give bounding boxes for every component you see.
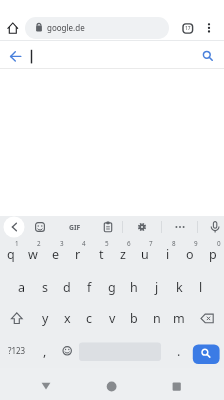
button[interactable] <box>5 303 28 334</box>
staticText: 5 <box>105 239 109 248</box>
button[interactable]: w <box>22 239 44 270</box>
staticText: 9 <box>194 239 198 248</box>
button[interactable]: , <box>35 336 55 367</box>
staticText: t <box>99 246 104 263</box>
staticText: 2 <box>37 239 41 248</box>
button[interactable]: z <box>112 239 134 270</box>
staticText: google.de <box>47 22 85 33</box>
button[interactable] <box>79 343 161 362</box>
button[interactable] <box>196 303 219 334</box>
button[interactable]: y <box>34 303 56 334</box>
button[interactable]: v <box>101 303 123 334</box>
staticText: . <box>177 343 181 360</box>
button[interactable]: b <box>123 303 145 334</box>
button[interactable] <box>96 371 128 399</box>
staticText: y <box>42 310 49 327</box>
staticText: 7 <box>149 239 153 248</box>
button[interactable]: d <box>56 272 78 303</box>
button[interactable]: c <box>78 303 100 334</box>
button[interactable] <box>25 17 169 39</box>
button[interactable] <box>193 343 220 363</box>
button[interactable]: t <box>90 239 112 270</box>
button[interactable]: k <box>168 272 190 303</box>
button[interactable] <box>169 216 191 238</box>
staticText: c <box>86 310 93 327</box>
staticText: h <box>130 279 138 296</box>
staticText: g <box>108 279 116 296</box>
staticText: 3 <box>60 239 64 248</box>
button[interactable] <box>56 335 78 366</box>
button[interactable] <box>6 46 26 67</box>
button[interactable]: . <box>169 336 189 367</box>
button[interactable]: n <box>146 303 168 334</box>
button[interactable] <box>29 216 51 238</box>
button[interactable]: l <box>190 272 212 303</box>
staticText: n <box>153 310 161 327</box>
button[interactable]: x <box>56 303 78 334</box>
staticText: k <box>176 279 183 296</box>
button[interactable] <box>179 20 196 37</box>
button[interactable]: m <box>168 303 190 334</box>
button[interactable]: j <box>146 272 168 303</box>
staticText: 4 <box>82 239 86 248</box>
button[interactable]: s <box>34 272 56 303</box>
button[interactable]: u <box>134 239 156 270</box>
button[interactable] <box>64 216 86 238</box>
staticText: ?123 <box>8 345 26 356</box>
button[interactable] <box>160 371 193 399</box>
staticText: 1 <box>15 239 19 248</box>
staticText: v <box>109 310 116 327</box>
staticText: GIF <box>69 223 81 232</box>
staticText: 8 <box>172 239 176 248</box>
button[interactable]: e <box>45 239 67 270</box>
staticText: s <box>42 279 48 296</box>
button[interactable] <box>201 19 217 37</box>
button[interactable] <box>204 216 224 238</box>
button[interactable]: g <box>101 272 123 303</box>
staticText: 6 <box>127 239 131 248</box>
button[interactable]: ?123 <box>2 335 32 366</box>
staticText: a <box>18 279 26 296</box>
button[interactable] <box>97 216 119 238</box>
staticText: u <box>141 246 149 263</box>
staticText: o <box>186 246 194 263</box>
staticText: r <box>75 246 81 263</box>
staticText: b <box>130 310 138 327</box>
button[interactable]: p <box>202 239 224 270</box>
staticText: j <box>155 279 159 296</box>
staticText: m <box>173 310 185 327</box>
staticText: i <box>166 246 170 263</box>
staticText: f <box>87 279 92 296</box>
button[interactable] <box>30 371 62 399</box>
button[interactable] <box>3 216 25 238</box>
staticText: w <box>28 246 38 263</box>
button[interactable]: f <box>78 272 100 303</box>
staticText: , <box>43 343 47 360</box>
button[interactable]: r <box>67 239 89 270</box>
button[interactable]: h <box>123 272 145 303</box>
staticText: p <box>209 246 217 263</box>
staticText: q <box>7 246 15 263</box>
button[interactable] <box>196 44 217 65</box>
button[interactable]: a <box>11 272 33 303</box>
button[interactable] <box>28 42 192 67</box>
staticText: e <box>52 246 60 263</box>
staticText: x <box>64 310 71 327</box>
button[interactable]: q <box>0 239 22 270</box>
button[interactable] <box>4 19 22 37</box>
staticText: 17 <box>185 25 191 32</box>
staticText: z <box>120 246 126 263</box>
staticText: l <box>199 279 203 296</box>
button[interactable] <box>131 216 153 238</box>
staticText: 0 <box>217 239 221 248</box>
staticText: d <box>63 279 71 296</box>
button[interactable]: o <box>179 239 201 270</box>
button[interactable]: i <box>157 239 179 270</box>
